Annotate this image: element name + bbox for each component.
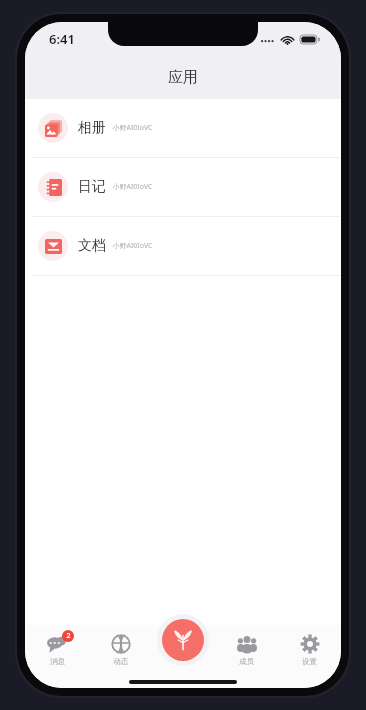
staticText: 6:41 xyxy=(49,30,75,48)
staticText: 应用 xyxy=(168,68,198,87)
staticText: 动态 xyxy=(113,657,128,666)
staticText: 小野AI0IoVC xyxy=(112,241,153,251)
button[interactable]: 2 xyxy=(25,625,89,675)
button[interactable]: 成员 xyxy=(215,625,278,675)
staticText: 小野AI0IoVC xyxy=(112,182,153,192)
staticText: 日记 xyxy=(78,178,106,196)
staticText: 2 xyxy=(66,631,71,641)
button[interactable]: 文档 xyxy=(25,217,341,275)
button[interactable]: 设置 xyxy=(278,625,341,675)
button[interactable]: 相册 xyxy=(25,99,341,157)
button[interactable]: Add xyxy=(162,619,204,661)
staticText: 设置 xyxy=(302,657,317,666)
button[interactable]: 日记 xyxy=(25,158,341,216)
staticText: 消息 xyxy=(50,657,65,666)
button[interactable]: 动态 xyxy=(89,625,152,675)
staticText: 成员 xyxy=(239,657,254,666)
staticText: 文档 xyxy=(78,237,106,255)
staticText: 小野AI0IoVC xyxy=(112,123,153,133)
staticText: 相册 xyxy=(78,119,106,137)
